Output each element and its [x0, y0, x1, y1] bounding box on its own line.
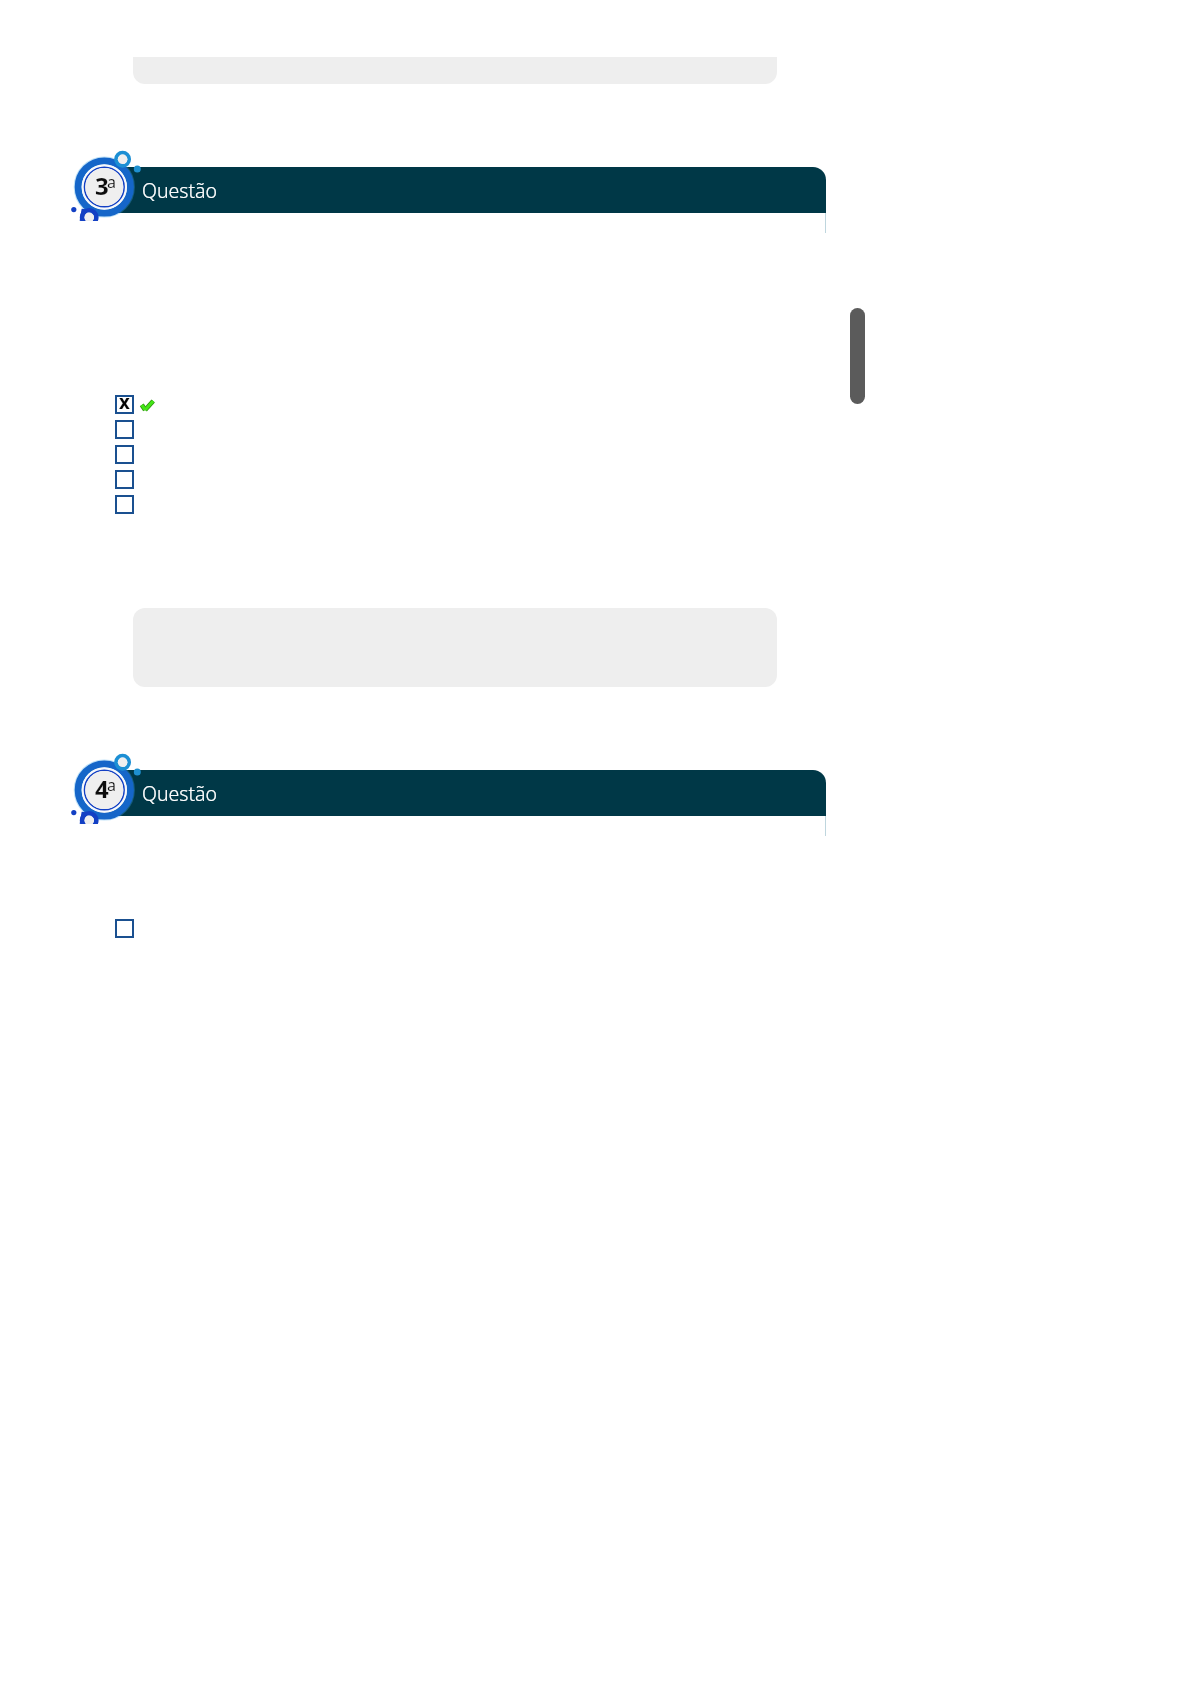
button[interactable]: Alternativa — [115, 919, 134, 938]
button[interactable]: Questão 4 — [68, 750, 148, 824]
button[interactable]: Alternativa — [115, 470, 134, 489]
button[interactable]: Questão — [92, 167, 826, 213]
button[interactable]: Alternativa — [115, 445, 134, 464]
other: Scroll — [850, 308, 865, 404]
staticText: 4 — [95, 772, 109, 805]
staticText: Questão — [142, 780, 218, 807]
staticText: a — [107, 774, 116, 796]
button[interactable]: Questão — [92, 770, 826, 816]
button[interactable]: Questão 3 — [68, 147, 148, 221]
staticText: a — [107, 171, 116, 193]
staticText: X — [119, 393, 130, 412]
staticText: 3 — [95, 169, 109, 202]
button[interactable]: Alternativa — [115, 420, 134, 439]
staticText: Questão — [142, 177, 218, 204]
button[interactable]: Alternativa — [115, 495, 134, 514]
button[interactable]: Alternativa — [115, 395, 134, 414]
